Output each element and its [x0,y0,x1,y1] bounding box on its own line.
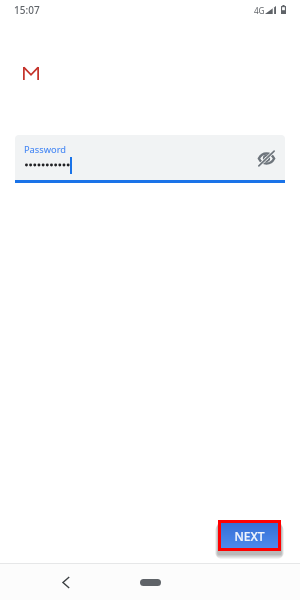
staticText: 15:07 [14,3,40,17]
staticText: NEXT [234,528,265,544]
button[interactable]: Back [54,570,78,594]
staticText: Password [24,143,67,156]
staticText: 4G [254,5,265,16]
button[interactable]: Show password [254,146,279,171]
button[interactable]: NEXT [221,523,278,548]
button[interactable]: Home [140,579,161,586]
button[interactable]: Password [15,135,285,180]
